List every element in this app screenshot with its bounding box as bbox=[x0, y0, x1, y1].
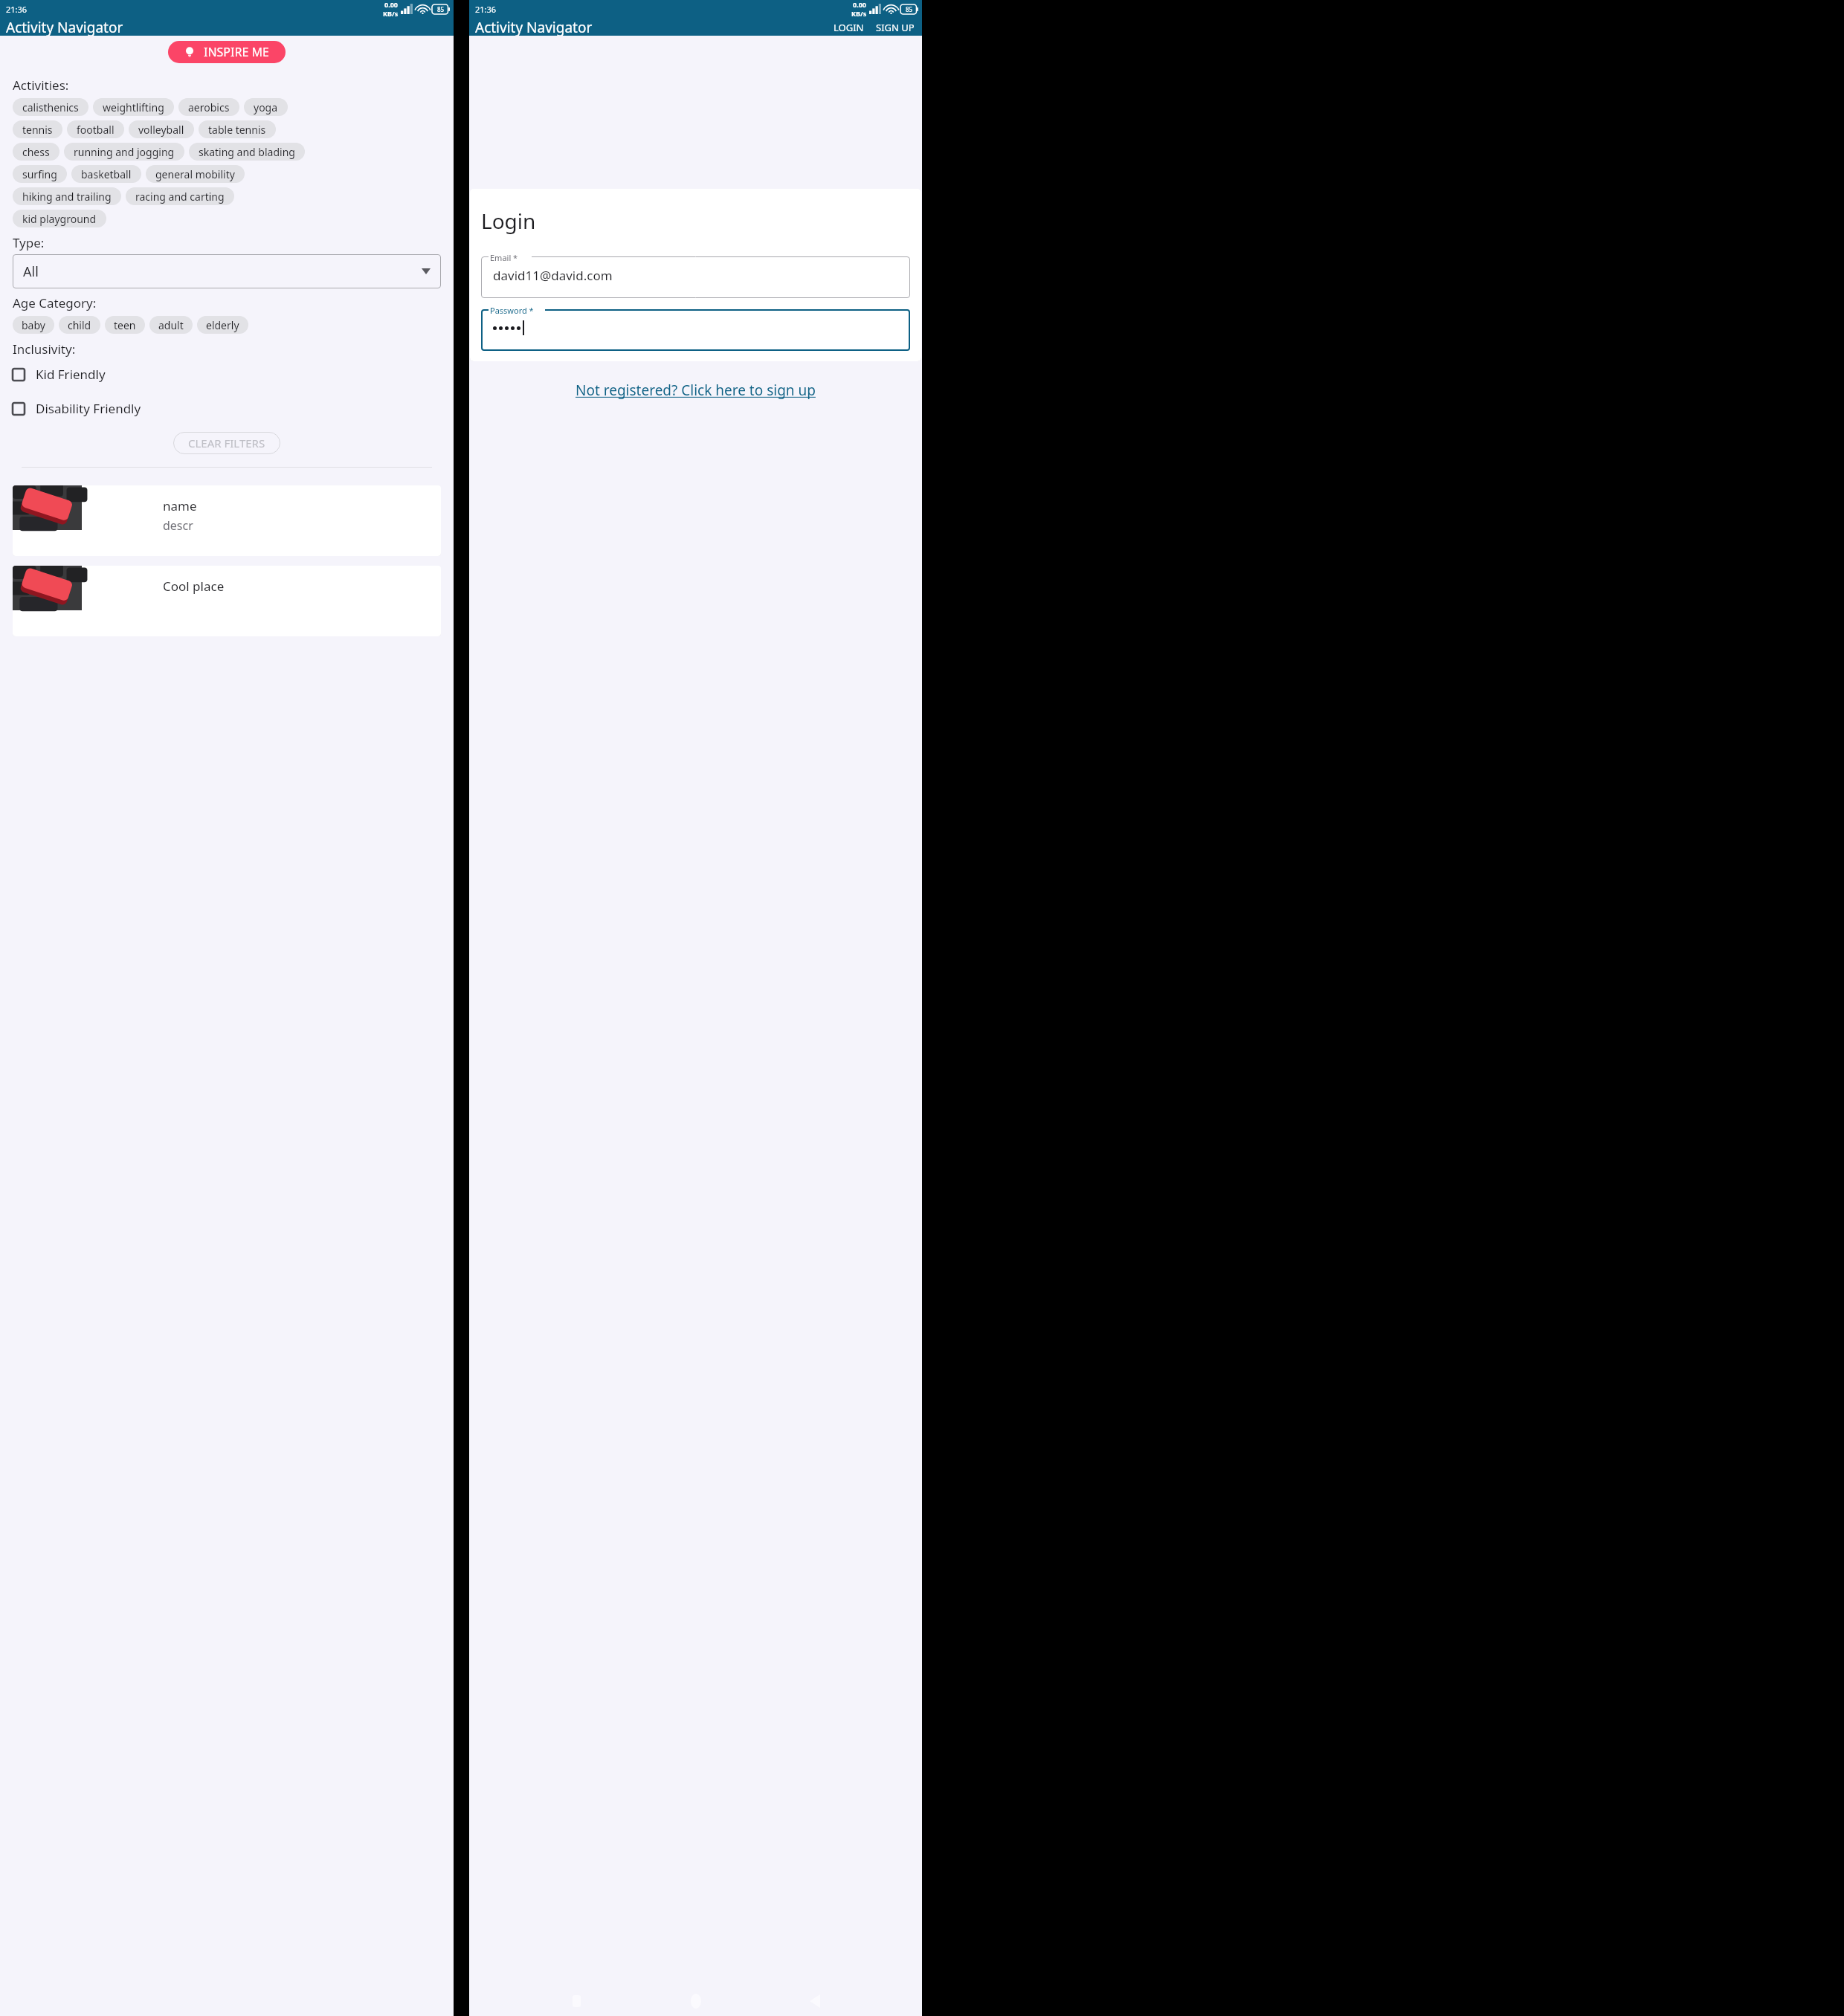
button[interactable]: baby bbox=[13, 316, 54, 334]
staticText: Password * bbox=[490, 305, 534, 316]
staticText: skating and blading bbox=[199, 145, 295, 159]
staticText: INSPIRE ME bbox=[204, 44, 269, 60]
staticText: Age Category: bbox=[13, 294, 97, 311]
button[interactable]: running and jogging bbox=[64, 143, 184, 161]
button[interactable]: volleyball bbox=[129, 120, 194, 138]
staticText: LOGIN bbox=[834, 21, 864, 33]
staticText: david11@david.com bbox=[493, 267, 613, 284]
staticText: 0.00 bbox=[384, 0, 398, 9]
button[interactable]: Kid Friendly bbox=[13, 360, 441, 389]
staticText: calisthenics bbox=[22, 100, 79, 114]
button[interactable]: tennis bbox=[13, 120, 62, 138]
staticText: Cool place bbox=[163, 578, 225, 595]
staticText: 21:36 bbox=[475, 4, 497, 15]
staticText: running and jogging bbox=[74, 145, 175, 159]
staticText: All bbox=[23, 262, 39, 281]
button[interactable]: weightlifting bbox=[93, 98, 174, 116]
staticText: 21:36 bbox=[6, 4, 28, 15]
staticText: chess bbox=[22, 145, 50, 159]
staticText: yoga bbox=[254, 100, 278, 114]
staticText: baby bbox=[22, 318, 45, 332]
staticText: Disability Friendly bbox=[36, 400, 141, 417]
staticText: weightlifting bbox=[103, 100, 164, 114]
staticText: SIGN UP bbox=[876, 21, 915, 33]
staticText: Activity Navigator bbox=[6, 18, 123, 36]
button[interactable]: chess bbox=[13, 143, 59, 161]
button[interactable]: adult bbox=[149, 316, 193, 334]
button[interactable]: All bbox=[13, 254, 441, 288]
button[interactable]: teen bbox=[105, 316, 145, 334]
button[interactable]: INSPIRE ME bbox=[168, 41, 286, 63]
button[interactable]: surfing bbox=[13, 165, 67, 183]
button[interactable]: calisthenics bbox=[13, 98, 88, 116]
staticText: racing and carting bbox=[135, 190, 225, 204]
staticText: Activity Navigator bbox=[475, 18, 593, 36]
staticText: child bbox=[68, 318, 91, 332]
staticText: Type: bbox=[13, 234, 45, 251]
staticText: Activities: bbox=[13, 77, 69, 94]
button[interactable]: kid playground bbox=[13, 210, 106, 227]
button[interactable]: football bbox=[67, 120, 124, 138]
button[interactable]: SIGN UP bbox=[873, 18, 918, 36]
staticText: Inclusivity: bbox=[13, 340, 76, 358]
staticText: name bbox=[163, 497, 197, 514]
staticText: CLEAR FILTERS bbox=[188, 436, 265, 450]
button[interactable]: basketball bbox=[71, 165, 141, 183]
button[interactable]: Disability Friendly bbox=[13, 394, 441, 423]
staticText: 0.00 bbox=[853, 0, 866, 9]
staticText: elderly bbox=[206, 318, 239, 332]
button[interactable]: table tennis bbox=[199, 120, 276, 138]
staticText: KB/s bbox=[851, 9, 867, 18]
button[interactable]: yoga bbox=[244, 98, 288, 116]
staticText: surfing bbox=[22, 167, 57, 181]
staticText: aerobics bbox=[188, 100, 230, 114]
button[interactable]: racing and carting bbox=[126, 187, 234, 205]
staticText: table tennis bbox=[208, 123, 266, 137]
button[interactable]: child bbox=[59, 316, 100, 334]
staticText: Email * bbox=[490, 252, 518, 263]
staticText: kid playground bbox=[22, 212, 97, 226]
button[interactable]: aerobics bbox=[178, 98, 239, 116]
button[interactable]: hiking and trailing bbox=[13, 187, 121, 205]
staticText: Kid Friendly bbox=[36, 366, 106, 383]
staticText: 85 bbox=[906, 5, 913, 13]
staticText: Not registered? Click here to sign up bbox=[576, 381, 816, 400]
staticText: adult bbox=[158, 318, 184, 332]
button[interactable]: Not registered? Click here to sign up bbox=[573, 378, 819, 403]
staticText: volleyball bbox=[138, 123, 184, 137]
staticText: teen bbox=[114, 318, 136, 332]
staticText: football bbox=[77, 123, 115, 137]
staticText: Login bbox=[481, 207, 536, 235]
button[interactable]: LOGIN bbox=[831, 18, 867, 36]
button[interactable]: CLEAR FILTERS bbox=[173, 432, 280, 454]
staticText: 85 bbox=[437, 5, 445, 13]
staticText: hiking and trailing bbox=[22, 190, 112, 204]
staticText: tennis bbox=[22, 123, 53, 137]
staticText: descr bbox=[163, 517, 193, 534]
staticText: general mobility bbox=[155, 167, 235, 181]
staticText: basketball bbox=[81, 167, 132, 181]
staticText: KB/s bbox=[383, 9, 399, 18]
button[interactable]: general mobility bbox=[146, 165, 245, 183]
button[interactable]: skating and blading bbox=[189, 143, 305, 161]
button[interactable]: elderly bbox=[197, 316, 248, 334]
